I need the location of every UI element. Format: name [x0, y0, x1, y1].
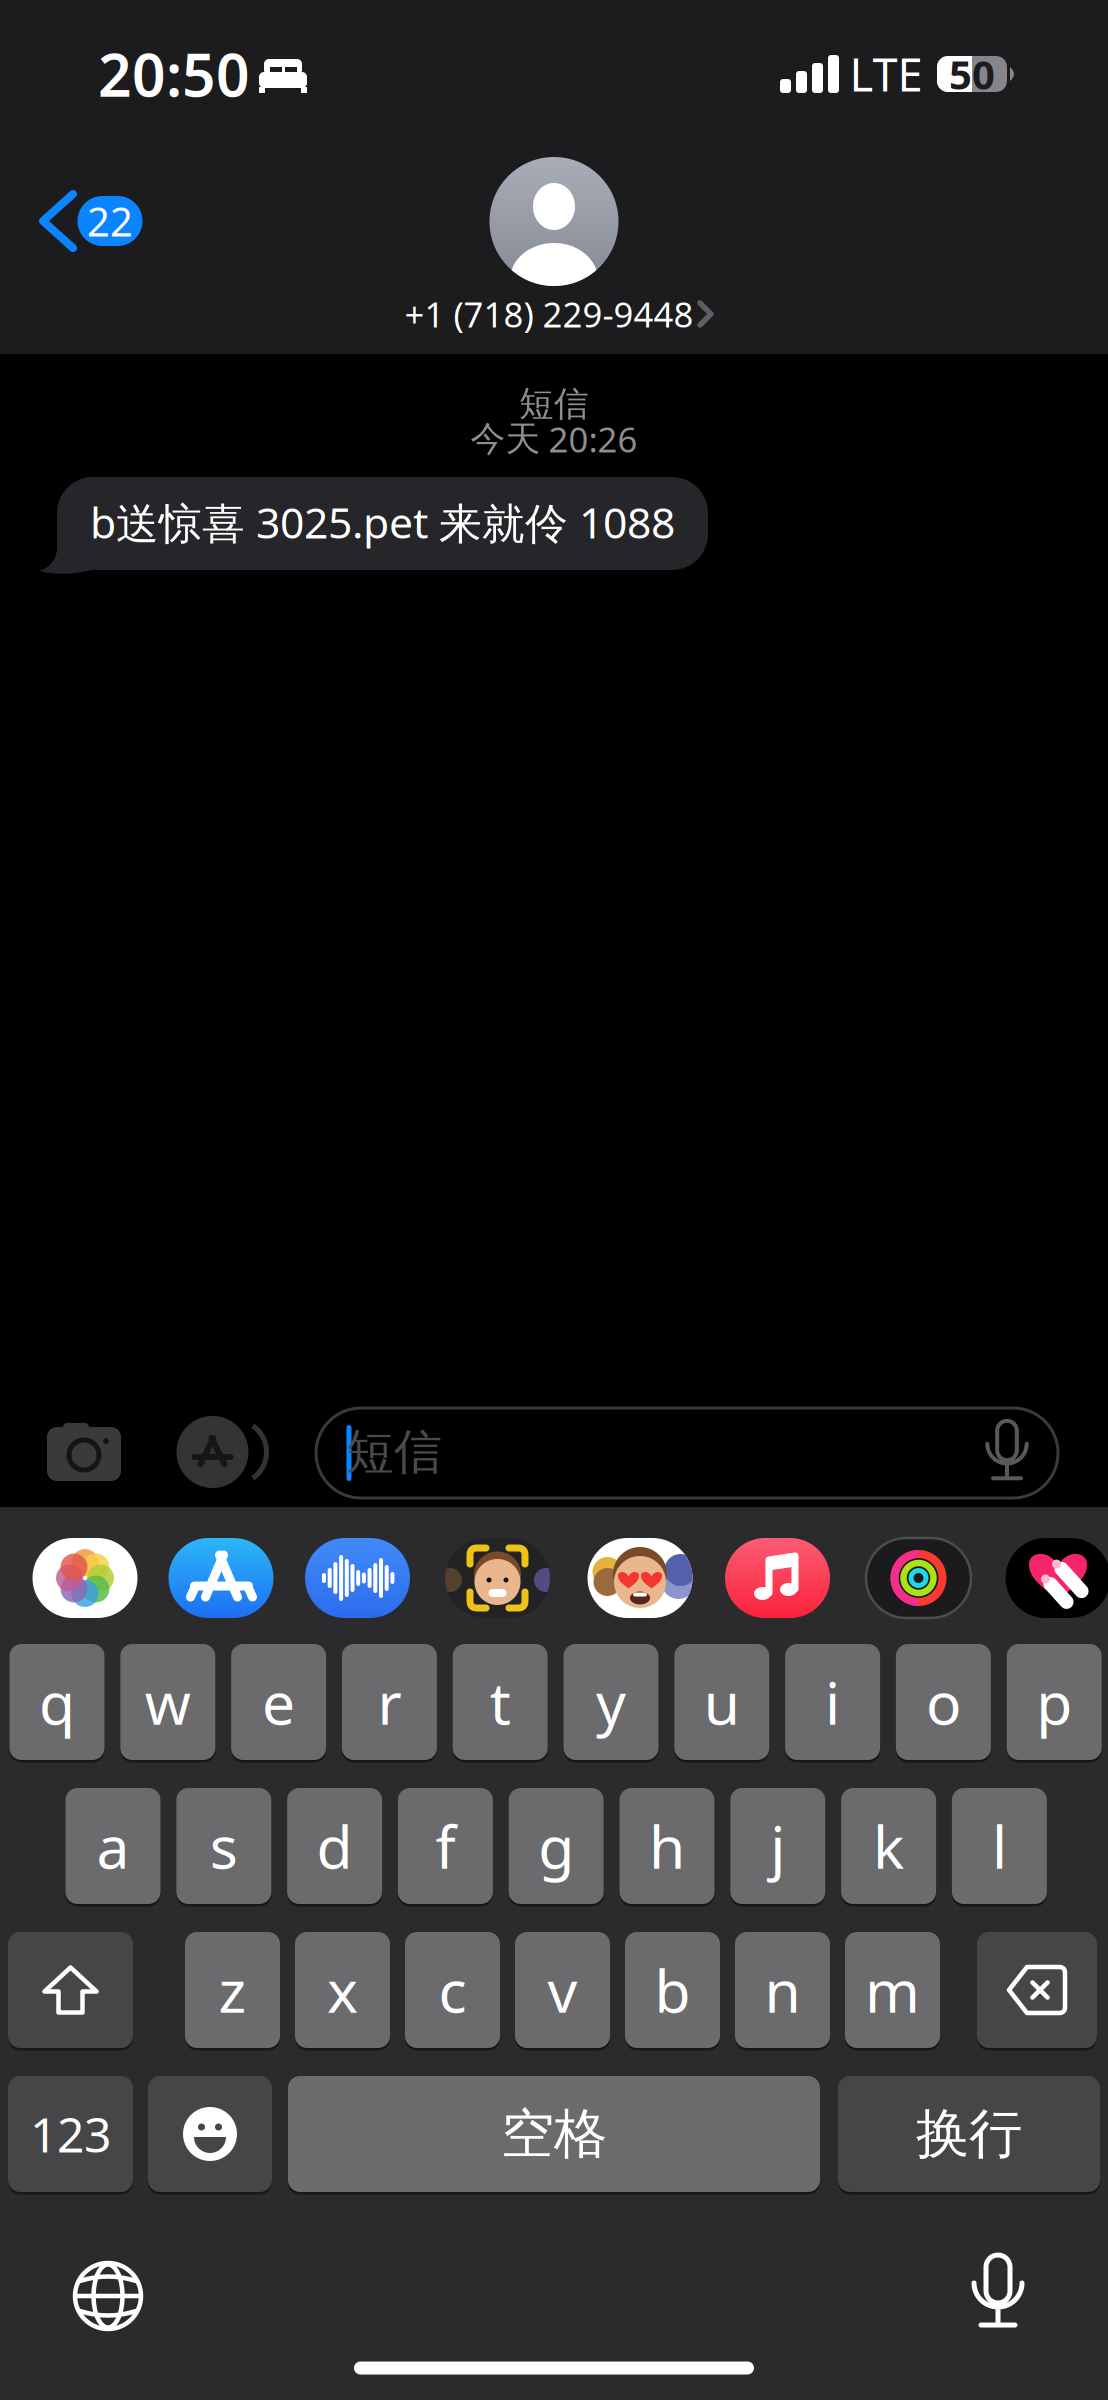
button[interactable]: z	[185, 1932, 280, 2048]
button[interactable]: x	[295, 1932, 390, 2048]
button[interactable]: Memoji	[445, 1538, 550, 1618]
button[interactable]: t	[453, 1644, 548, 1760]
button[interactable]: l	[952, 1788, 1047, 1904]
staticText: 短信	[346, 1422, 442, 1481]
staticText: 22	[87, 194, 133, 247]
staticText: 空格	[501, 2101, 607, 2167]
staticText: g	[538, 1807, 574, 1885]
button[interactable]: Delete	[977, 1931, 1097, 2049]
button[interactable]: 123	[8, 2076, 133, 2192]
staticText: o	[926, 1663, 961, 1741]
button[interactable]: s	[176, 1788, 271, 1904]
button[interactable]: Music recognition	[305, 1538, 410, 1618]
staticText: w	[145, 1663, 191, 1741]
button[interactable]: w	[120, 1644, 215, 1760]
button[interactable]: i	[785, 1644, 880, 1760]
staticText: +1 (718) 229-9448	[404, 291, 693, 337]
button[interactable]: Message text field	[316, 1408, 1058, 1498]
button[interactable]: r	[342, 1644, 437, 1760]
button[interactable]: v	[515, 1932, 610, 2048]
button[interactable]: g	[509, 1788, 604, 1904]
staticText: x	[327, 1951, 358, 2029]
staticText: i	[825, 1663, 840, 1741]
button[interactable]: Back	[28, 191, 158, 251]
button[interactable]: 换行	[838, 2076, 1100, 2192]
button[interactable]: h	[619, 1788, 714, 1904]
button[interactable]: o	[896, 1644, 991, 1760]
staticText: q	[39, 1663, 75, 1741]
button[interactable]: q	[9, 1644, 104, 1760]
staticText: 20:26	[548, 416, 637, 462]
button[interactable]: 空格	[288, 2076, 820, 2192]
staticText: u	[704, 1663, 740, 1741]
button[interactable]: d	[287, 1788, 382, 1904]
staticText: m	[865, 1951, 920, 2029]
staticText: b	[654, 1951, 690, 2029]
staticText: a	[96, 1807, 129, 1885]
button[interactable]: m	[845, 1932, 940, 2048]
button[interactable]: e	[231, 1644, 326, 1760]
staticText: k	[873, 1807, 904, 1885]
button[interactable]: u	[674, 1644, 769, 1760]
staticText: h	[649, 1807, 685, 1885]
staticText: y	[596, 1663, 626, 1741]
staticText: s	[210, 1807, 238, 1885]
button[interactable]: p	[1007, 1644, 1102, 1760]
button[interactable]: App Store	[168, 1538, 273, 1618]
button[interactable]: a	[65, 1788, 160, 1904]
staticText: c	[438, 1951, 466, 2029]
staticText: j	[770, 1807, 785, 1885]
button[interactable]: Shift	[8, 1931, 133, 2049]
staticText: t	[490, 1663, 511, 1741]
button[interactable]: Conversation details	[394, 157, 714, 329]
staticText: e	[262, 1663, 295, 1741]
staticText: 50	[949, 47, 995, 100]
button[interactable]: Fitness stickers	[1005, 1538, 1108, 1618]
button[interactable]: iMessage apps	[176, 1416, 271, 1488]
staticText: v	[547, 1951, 577, 2029]
staticText: n	[764, 1951, 800, 2029]
button[interactable]: f	[398, 1788, 493, 1904]
button[interactable]: Emoji	[148, 2075, 272, 2193]
button[interactable]: b	[625, 1932, 720, 2048]
staticText: l	[992, 1807, 1007, 1885]
button[interactable]: Activity	[866, 1538, 971, 1618]
staticText: r	[377, 1663, 401, 1741]
staticText: z	[218, 1951, 246, 2029]
button[interactable]: n	[735, 1932, 830, 2048]
staticText: 短信	[519, 383, 589, 425]
button[interactable]: Next keyboard	[72, 2260, 144, 2332]
staticText: 20:50	[98, 35, 250, 113]
button[interactable]: Music	[725, 1538, 830, 1618]
staticText: 换行	[916, 2101, 1022, 2167]
button[interactable]: Photos	[32, 1538, 137, 1618]
button[interactable]: Dictation	[966, 2253, 1030, 2333]
button[interactable]: Memoji stickers	[587, 1538, 692, 1618]
button[interactable]: Camera	[44, 1422, 124, 1482]
staticText: b送惊喜 3025.pet 来就伶 1088	[90, 494, 675, 550]
staticText: p	[1036, 1663, 1072, 1741]
staticText: d	[317, 1807, 353, 1885]
staticText: 123	[30, 2102, 111, 2166]
button[interactable]: y	[563, 1644, 658, 1760]
button[interactable]: k	[841, 1788, 936, 1904]
staticText: f	[435, 1807, 455, 1885]
button[interactable]: c	[405, 1932, 500, 2048]
button[interactable]: j	[730, 1788, 825, 1904]
staticText: 今天	[470, 418, 540, 460]
staticText: LTE	[849, 44, 922, 104]
